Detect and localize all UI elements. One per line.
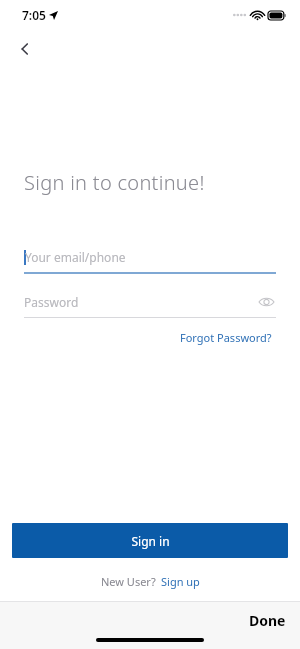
button[interactable]: Show password [256,292,276,312]
button[interactable]: Your email/phone [24,249,276,274]
button[interactable]: Forgot Password? [176,326,276,349]
staticText: 7:05 [22,7,46,23]
button[interactable]: Back [8,32,42,66]
staticText: New User? [101,574,156,589]
staticText: Sign in to continue! [24,169,205,196]
staticText: Done [249,611,286,630]
staticText: Sign up [161,574,200,589]
button[interactable]: Done [249,611,286,630]
staticText: Your email/phone [25,249,126,265]
button[interactable]: Sign in [12,523,288,558]
staticText: Sign in [131,533,170,549]
button[interactable]: Password [24,292,276,312]
staticText: Password [24,294,256,310]
staticText: Forgot Password? [180,330,272,345]
button[interactable]: Sign up [161,574,200,589]
